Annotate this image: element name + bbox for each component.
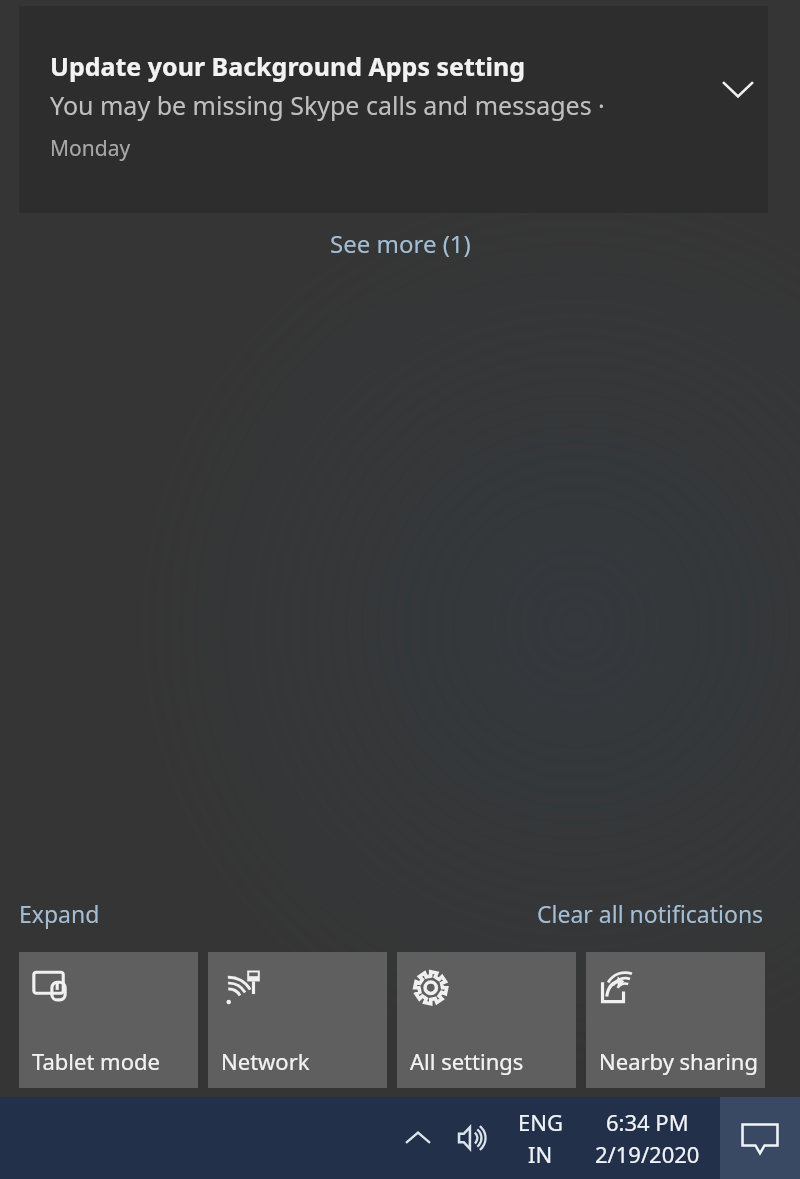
button[interactable]: Network bbox=[208, 952, 387, 1088]
button[interactable]: Tablet mode bbox=[19, 952, 198, 1088]
button[interactable]: Show hidden icons bbox=[394, 1103, 442, 1173]
staticText: You may be missing Skype calls and messa… bbox=[50, 88, 605, 122]
button[interactable]: Clear all notifications bbox=[537, 898, 764, 929]
staticText: 6:34 PM bbox=[606, 1107, 689, 1137]
staticText: Tablet mode bbox=[32, 1046, 160, 1076]
staticText: Network bbox=[221, 1046, 310, 1076]
staticText: Nearby sharing bbox=[599, 1046, 758, 1076]
staticText: Clear all notifications bbox=[537, 898, 764, 929]
button[interactable]: Update your Background Apps setting bbox=[19, 6, 768, 213]
staticText: Update your Background Apps setting bbox=[50, 49, 526, 83]
staticText: All settings bbox=[410, 1046, 524, 1076]
button[interactable]: Expand bbox=[19, 898, 100, 929]
staticText: 2/19/2020 bbox=[595, 1139, 700, 1169]
button[interactable]: See more (1) bbox=[330, 227, 471, 260]
staticText: Monday bbox=[50, 134, 131, 163]
button[interactable]: 6:34 PM bbox=[595, 1107, 700, 1169]
staticText: See more (1) bbox=[330, 227, 471, 260]
staticText: IN bbox=[528, 1139, 553, 1169]
button[interactable]: Collapse notification bbox=[713, 64, 763, 114]
button[interactable]: Action Center bbox=[720, 1097, 800, 1179]
staticText: ENG bbox=[518, 1107, 563, 1137]
button[interactable]: ENG bbox=[518, 1107, 563, 1169]
button[interactable]: Volume bbox=[448, 1103, 500, 1173]
button[interactable]: All settings bbox=[397, 952, 576, 1088]
staticText: Expand bbox=[19, 898, 100, 929]
button[interactable]: Nearby sharing bbox=[586, 952, 765, 1088]
